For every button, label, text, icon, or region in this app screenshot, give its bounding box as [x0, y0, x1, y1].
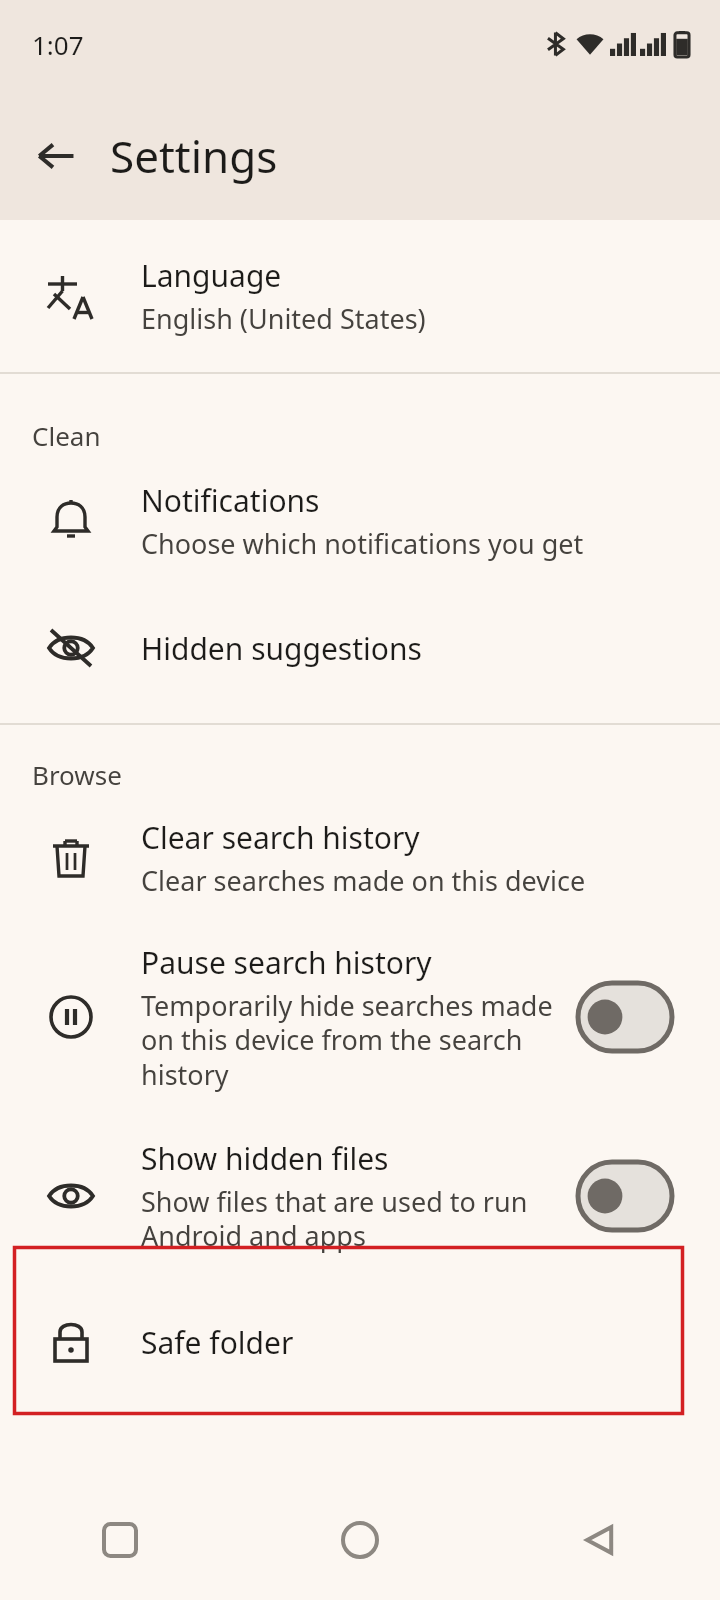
- staticText: Pause search history: [141, 942, 432, 983]
- button[interactable]: Safe folder: [0, 1282, 720, 1402]
- staticText: Clear search history: [141, 817, 420, 858]
- staticText: Show files that are used to run Android …: [141, 1183, 561, 1254]
- button[interactable]: Show hidden files: [0, 1110, 720, 1282]
- button[interactable]: Back: [22, 122, 90, 190]
- button[interactable]: Language: [0, 220, 720, 372]
- staticText: Choose which notifications you get: [141, 525, 584, 562]
- staticText: Clean: [32, 418, 101, 453]
- staticText: Show hidden files: [141, 1138, 389, 1179]
- staticText: Browse: [32, 757, 122, 792]
- button[interactable]: Home: [240, 1480, 480, 1600]
- button[interactable]: Pause search history: [0, 924, 720, 1110]
- staticText: Notifications: [141, 480, 320, 521]
- staticText: English (United States): [141, 300, 426, 337]
- button[interactable]: Pause search history toggle: [575, 980, 675, 1054]
- button[interactable]: Show hidden files toggle: [575, 1159, 675, 1233]
- staticText: Clear searches made on this device: [141, 862, 586, 899]
- button[interactable]: Back: [480, 1480, 720, 1600]
- button[interactable]: Hidden suggestions: [0, 589, 720, 707]
- staticText: Safe folder: [141, 1322, 294, 1363]
- staticText: Temporarily hide searches made on this d…: [141, 987, 561, 1093]
- staticText: 1:07: [32, 27, 84, 62]
- staticText: Hidden suggestions: [141, 628, 422, 669]
- button[interactable]: Notifications: [0, 453, 720, 589]
- staticText: Settings: [110, 126, 278, 186]
- button[interactable]: Clear search history: [0, 792, 720, 924]
- staticText: Language: [141, 255, 282, 296]
- button[interactable]: Recents: [0, 1480, 240, 1600]
